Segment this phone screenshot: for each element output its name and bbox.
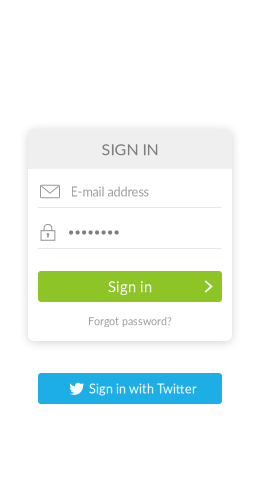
button[interactable]: Sign in with Twitter <box>38 373 222 404</box>
button[interactable]: Sign in <box>38 271 222 302</box>
staticText: Sign in with Twitter <box>89 381 197 396</box>
staticText: Sign in <box>108 278 152 295</box>
button[interactable]: Forgot password? <box>38 312 222 330</box>
staticText: E-mail address <box>70 184 148 199</box>
staticText: SIGN IN <box>101 139 158 159</box>
staticText: Forgot password? <box>88 315 172 327</box>
